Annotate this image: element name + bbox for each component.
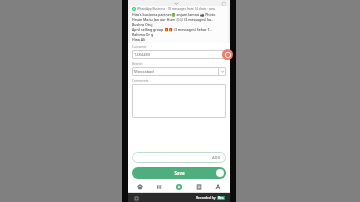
- staticText: Rahima Or g: [132, 32, 226, 37]
- staticText: Save: [174, 170, 185, 176]
- button[interactable]: ADD: [132, 152, 226, 163]
- button[interactable]: Orders: [151, 181, 167, 192]
- button[interactable]: Recents: [134, 196, 138, 200]
- staticText: Hrsan Manu Jan aur Hum 😊😊 (3 messages) k…: [132, 17, 226, 22]
- staticText: 1284480: [134, 52, 151, 57]
- staticText: Rec: [218, 196, 224, 200]
- button[interactable]: [132, 84, 226, 118]
- button[interactable]: WhatsApp Business · 18 messages from 14 …: [130, 6, 228, 43]
- button[interactable]: Floating action: [222, 49, 233, 60]
- staticText: Hina Ali: [132, 37, 226, 42]
- button[interactable]: Moosabad: [132, 67, 226, 76]
- button[interactable]: Home: [132, 181, 148, 192]
- staticText: Moosabad: [134, 69, 218, 74]
- staticText: Bushra Oruj: [132, 22, 226, 27]
- staticText: Customer: [132, 45, 147, 49]
- button[interactable]: Add: [171, 181, 187, 192]
- staticText: WhatsApp Business · 18 messages from 14 …: [137, 7, 215, 11]
- button[interactable]: Reports: [191, 181, 207, 192]
- staticText: ADD: [212, 155, 221, 160]
- staticText: Recorded by: [196, 196, 217, 200]
- staticText: April selling group 🎁🎁 (3 messages) Seha…: [132, 27, 226, 32]
- button[interactable]: Settings: [221, 1, 226, 6]
- staticText: Comments: [132, 79, 149, 83]
- button[interactable]: Save: [132, 167, 226, 179]
- button[interactable]: Profile: [210, 181, 226, 192]
- staticText: Branch: [132, 62, 143, 66]
- button[interactable]: 1284480: [132, 50, 226, 59]
- staticText: Hira's business partner🟢 anjum lamna 📷 P…: [132, 12, 226, 17]
